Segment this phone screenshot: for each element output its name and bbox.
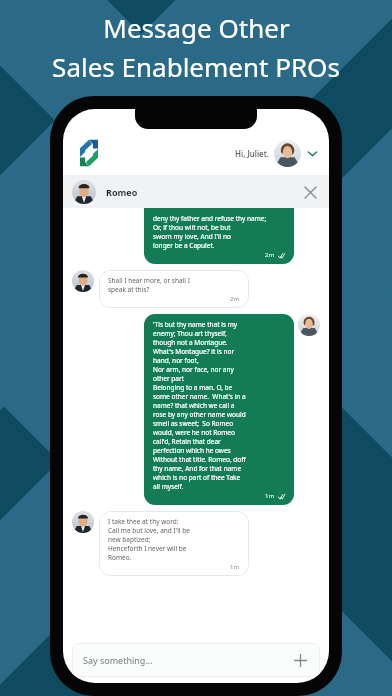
staticText: other part — [153, 374, 185, 383]
staticText: rose by any other name would — [153, 410, 246, 419]
button[interactable]: 'Tis but thy name that is my — [144, 314, 294, 505]
staticText: Say something... — [83, 654, 153, 666]
staticText: 1m — [230, 563, 240, 571]
button[interactable]: Add attachment — [291, 651, 309, 669]
button[interactable]: Shall I hear more, or shall I — [99, 270, 249, 308]
staticText: 1m — [265, 492, 275, 500]
staticText: Hi, Juliet. — [235, 148, 269, 159]
staticText: call'd, Retain that dear — [153, 437, 221, 446]
button[interactable]: I take thee at thy word: — [99, 511, 249, 576]
staticText: Sales Enablement PROs — [52, 49, 340, 84]
staticText: all myself. — [153, 482, 184, 491]
staticText: Belonging to a man. O, be — [153, 383, 233, 392]
staticText: Message Other — [103, 10, 290, 45]
staticText: perfection which he owes — [153, 446, 231, 455]
button[interactable]: deny thy father and refuse thy name; — [144, 208, 294, 264]
button[interactable]: Romeo — [63, 175, 329, 208]
staticText: deny thy father and refuse thy name; — [153, 214, 267, 223]
staticText: new baptized; — [108, 535, 151, 544]
staticText: though not a Montague. — [153, 338, 228, 347]
button[interactable]: Seismic home — [74, 138, 104, 168]
staticText: Romeo — [106, 186, 138, 198]
staticText: sworn my love, And I'll no — [153, 232, 232, 241]
staticText: Or, if thou wilt not, be but — [153, 223, 231, 232]
button[interactable]: Close conversation — [300, 182, 320, 202]
staticText: longer be a Capulet. — [153, 241, 215, 250]
staticText: 'Tis but thy name that is my — [153, 320, 238, 329]
staticText: 2m — [265, 251, 275, 259]
button[interactable]: Account menu — [235, 140, 318, 167]
staticText: 2m — [230, 295, 240, 303]
staticText: What's Montague? it is nor — [153, 347, 235, 356]
staticText: Without that title. Romeo, doff — [153, 455, 246, 464]
staticText: thy name, And for that name — [153, 464, 242, 473]
staticText: Nor arm, nor face, nor any — [153, 365, 234, 374]
staticText: would, were he not Romeo — [153, 428, 235, 437]
staticText: smell as sweet; So Romeo — [153, 419, 234, 428]
staticText: hand, nor foot, — [153, 356, 199, 365]
staticText: I take thee at thy word: — [108, 517, 179, 526]
staticText: Shall I hear more, or shall I — [108, 276, 190, 285]
staticText: Romeo. — [108, 553, 132, 562]
staticText: Henceforth I never will be — [108, 544, 187, 553]
staticText: speak at this? — [108, 285, 150, 294]
staticText: enemy; Thou art thyself, — [153, 329, 227, 338]
staticText: Call me but love, and I'll be — [108, 526, 190, 535]
staticText: which is no part of thee Take — [153, 473, 241, 482]
button[interactable]: Say something... — [72, 643, 320, 677]
staticText: name? that which we call a — [153, 401, 235, 410]
staticText: some other name. What's in a — [153, 392, 246, 401]
